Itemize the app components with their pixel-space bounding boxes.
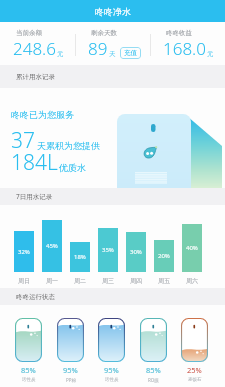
staticText: 7日用水记录 xyxy=(16,192,53,201)
staticText: RO膜 xyxy=(148,377,159,383)
button[interactable]: 45% xyxy=(42,220,62,272)
staticText: 充值 xyxy=(124,49,137,57)
staticText: 95% xyxy=(63,365,78,375)
staticText: 35% xyxy=(102,246,114,254)
staticText: 18% xyxy=(74,253,86,261)
staticText: 活性炭 xyxy=(105,377,119,383)
staticText: 元 xyxy=(207,50,214,58)
staticText: 45% xyxy=(46,242,58,250)
button[interactable]: 32% xyxy=(14,231,34,272)
button[interactable]: 95% xyxy=(98,318,125,383)
button[interactable]: 95% xyxy=(57,318,84,383)
staticText: 咚咚已为您服务 xyxy=(11,109,74,120)
button[interactable]: 18% xyxy=(70,242,90,272)
staticText: 剩余天数 xyxy=(91,29,117,37)
staticText: 周四 xyxy=(130,277,142,285)
staticText: 85% xyxy=(146,365,161,375)
staticText: 咚咚收益 xyxy=(166,29,192,37)
staticText: 麦饭石 xyxy=(188,377,202,383)
button[interactable]: 35% xyxy=(98,228,118,272)
staticText: 活性炭 xyxy=(22,377,36,383)
staticText: 37 xyxy=(11,126,35,155)
button[interactable]: 30% xyxy=(126,232,146,272)
staticText: 32% xyxy=(18,248,30,256)
staticText: 周五 xyxy=(158,277,170,285)
staticText: 85% xyxy=(21,365,36,375)
button[interactable]: 25% xyxy=(181,318,208,383)
button[interactable]: 85% xyxy=(140,318,167,383)
staticText: 周日 xyxy=(18,277,30,285)
staticText: 周六 xyxy=(186,277,198,285)
staticText: 95% xyxy=(104,365,119,375)
staticText: 184L xyxy=(11,148,58,177)
staticText: 89 xyxy=(88,37,108,60)
staticText: 30% xyxy=(130,248,142,256)
staticText: 248.6 xyxy=(13,37,56,60)
staticText: 40% xyxy=(186,244,198,252)
staticText: 周二 xyxy=(74,277,86,285)
button[interactable]: 85% xyxy=(15,318,42,383)
staticText: 25% xyxy=(187,365,202,375)
staticText: 天 xyxy=(109,50,116,58)
staticText: 累计用水记录 xyxy=(16,73,55,81)
staticText: 168.0 xyxy=(163,37,206,60)
staticText: PP棉 xyxy=(66,377,76,383)
staticText: 20% xyxy=(158,252,170,260)
button[interactable]: 充值 xyxy=(120,47,141,59)
staticText: 咚咚净水 xyxy=(95,6,131,17)
staticText: 周一 xyxy=(46,277,58,285)
staticText: 优质水 xyxy=(59,162,86,173)
staticText: 周三 xyxy=(102,277,114,285)
staticText: 元 xyxy=(57,50,64,58)
button[interactable]: 20% xyxy=(154,240,174,272)
staticText: 天累积为您提供 xyxy=(37,140,100,151)
staticText: 当前余额 xyxy=(16,29,42,37)
staticText: 咚咚运行状态 xyxy=(16,293,55,301)
button[interactable]: 40% xyxy=(182,224,202,272)
